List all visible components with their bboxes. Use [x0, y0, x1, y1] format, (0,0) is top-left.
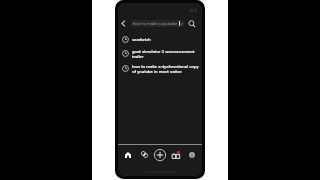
button[interactable]: Create: [152, 146, 168, 163]
button[interactable]: Home: [120, 146, 136, 163]
button[interactable]: how to make a youtube: [131, 20, 184, 27]
button[interactable]: Search: [186, 18, 197, 29]
button[interactable]: sandwich: [118, 32, 202, 46]
button[interactable]: Shorts: [136, 146, 152, 163]
staticText: how to make a youtube: [133, 21, 178, 26]
button[interactable]: Back: [118, 18, 129, 29]
staticText: how to make a dysfunctional copy of yout…: [132, 64, 199, 74]
button[interactable]: Subscriptions: [168, 146, 184, 163]
button[interactable]: goat simulator 3 announcement trailer: [118, 46, 202, 61]
staticText: clone app: [181, 21, 182, 26]
staticText: goat simulator 3 announcement trailer: [132, 49, 199, 59]
staticText: sandwich: [132, 37, 151, 42]
button[interactable]: how to make a dysfunctional copy of yout…: [118, 61, 202, 76]
button[interactable]: Account: [184, 146, 200, 163]
